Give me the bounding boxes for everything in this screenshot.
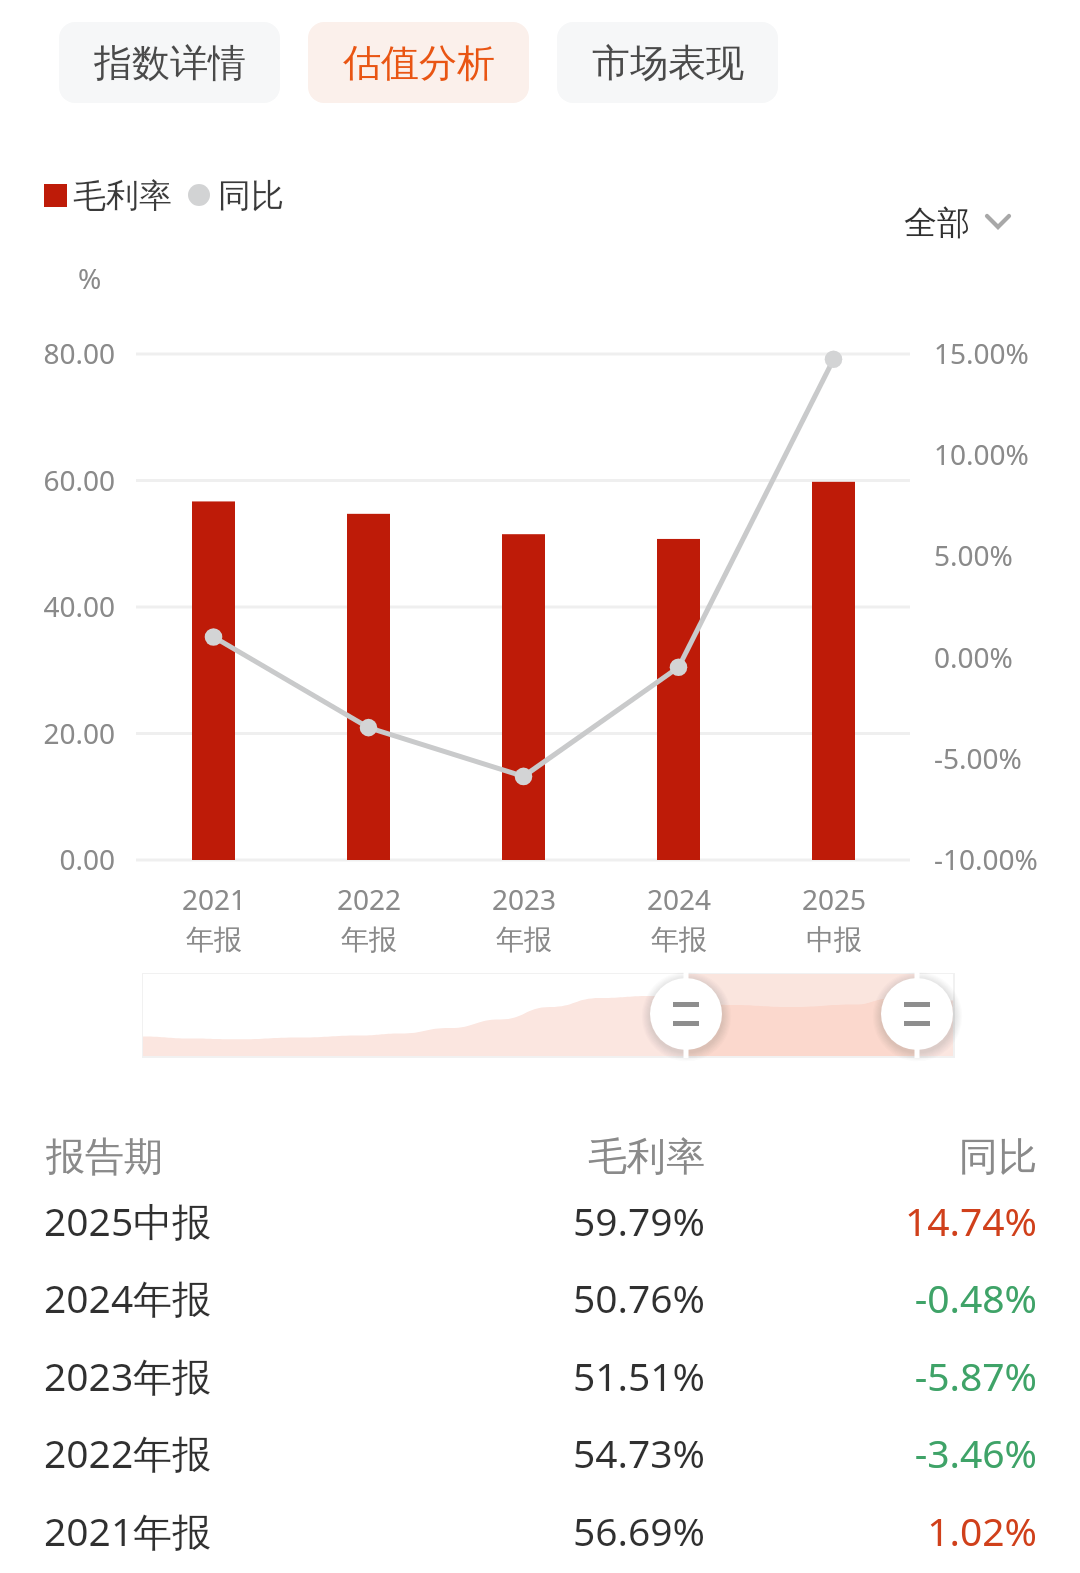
staticText: 56.69% — [305, 1504, 705, 1557]
staticText: 毛利率 — [73, 175, 172, 215]
staticText: 2025 — [802, 880, 867, 918]
staticText: 2025中报 — [44, 1194, 212, 1247]
staticText: -10.00% — [934, 840, 1038, 878]
staticText: 5.00% — [934, 536, 1013, 574]
button[interactable]: 2022年报 — [0, 1426, 1080, 1500]
staticText: -0.48% — [637, 1271, 1037, 1324]
staticText: -3.46% — [637, 1426, 1037, 1479]
staticText: 指数详情 — [94, 39, 246, 87]
button[interactable]: 报告期 — [0, 1124, 1080, 1182]
staticText: 中报 — [806, 922, 862, 957]
staticText: 2021年报 — [44, 1504, 212, 1557]
staticText: 20.00 — [0, 714, 115, 752]
staticText: 2022年报 — [44, 1426, 212, 1479]
button[interactable]: 指数详情 — [59, 22, 280, 103]
staticText: 10.00% — [934, 435, 1029, 473]
staticText: 59.79% — [305, 1194, 705, 1247]
staticText: 年报 — [186, 922, 242, 957]
staticText: 估值分析 — [343, 39, 495, 87]
staticText: 2024年报 — [44, 1271, 212, 1324]
staticText: 报告期 — [46, 1132, 163, 1181]
button[interactable]: Adjust range — [650, 978, 722, 1050]
button[interactable]: Adjust range — [881, 978, 953, 1050]
staticText: 2024 — [647, 880, 712, 918]
button[interactable]: 市场表现 — [557, 22, 778, 103]
staticText: 51.51% — [305, 1349, 705, 1402]
staticText: 2021 — [182, 880, 247, 918]
staticText: 2023年报 — [44, 1349, 212, 1402]
staticText: 14.74% — [637, 1194, 1037, 1247]
staticText: 40.00 — [0, 587, 115, 625]
staticText: 市场表现 — [592, 39, 744, 87]
staticText: 毛利率 — [305, 1132, 705, 1181]
staticText: 15.00% — [934, 334, 1029, 372]
staticText: 全部 — [904, 202, 970, 244]
staticText: 50.76% — [305, 1271, 705, 1324]
button[interactable]: 全部 — [904, 199, 1011, 247]
staticText: 60.00 — [0, 461, 115, 499]
staticText: 2023 — [492, 880, 557, 918]
button[interactable]: 2024年报 — [0, 1271, 1080, 1345]
button[interactable]: 估值分析 — [308, 22, 529, 103]
staticText: % — [78, 259, 102, 297]
staticText: 80.00 — [0, 334, 115, 372]
staticText: 54.73% — [305, 1426, 705, 1479]
staticText: -5.87% — [637, 1349, 1037, 1402]
staticText: -5.00% — [934, 739, 1022, 777]
staticText: 同比 — [218, 175, 284, 215]
button[interactable]: 2023年报 — [0, 1349, 1080, 1423]
staticText: 0.00% — [934, 638, 1013, 676]
staticText: 0.00 — [0, 840, 115, 878]
staticText: 2022 — [337, 880, 402, 918]
button[interactable]: 2025中报 — [0, 1194, 1080, 1268]
staticText: 同比 — [637, 1132, 1037, 1181]
staticText: 1.02% — [637, 1504, 1037, 1557]
staticText: 年报 — [496, 922, 552, 957]
staticText: 年报 — [341, 922, 397, 957]
button[interactable]: 2021年报 — [0, 1504, 1080, 1573]
staticText: 年报 — [651, 922, 707, 957]
